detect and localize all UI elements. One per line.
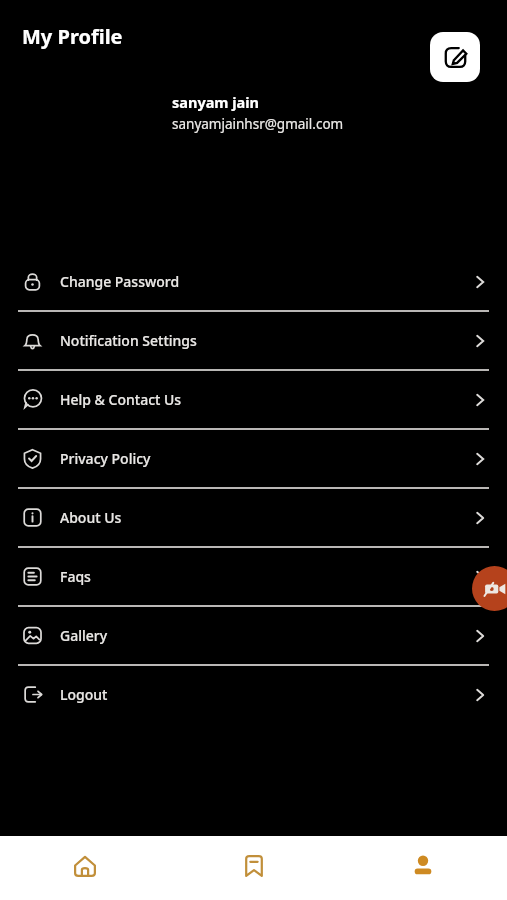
button[interactable]: About Us — [0, 489, 507, 546]
staticText: sanyamjainhsr@gmail.com — [172, 115, 344, 133]
staticText: Faqs — [60, 567, 91, 586]
button[interactable]: Bookmarks — [169, 836, 338, 900]
staticText: My Profile — [22, 23, 123, 50]
button[interactable]: Video call — [472, 566, 507, 611]
staticText: Notification Settings — [60, 331, 197, 350]
staticText: Gallery — [60, 626, 108, 645]
button[interactable]: Notification Settings — [0, 312, 507, 369]
button[interactable]: Profile — [338, 836, 507, 900]
button[interactable]: Home — [0, 836, 169, 900]
staticText: Logout — [60, 685, 108, 704]
staticText: Change Password — [60, 272, 180, 291]
button[interactable]: Edit profile — [430, 32, 480, 82]
staticText: sanyam jain — [172, 92, 260, 112]
button[interactable]: Faqs — [0, 548, 507, 605]
staticText: Privacy Policy — [60, 449, 151, 468]
button[interactable]: Gallery — [0, 607, 507, 664]
button[interactable]: Help & Contact Us — [0, 371, 507, 428]
button[interactable]: Privacy Policy — [0, 430, 507, 487]
button[interactable]: Change Password — [0, 253, 507, 310]
staticText: About Us — [60, 508, 122, 527]
staticText: Help & Contact Us — [60, 390, 182, 409]
button[interactable]: Logout — [0, 666, 507, 723]
